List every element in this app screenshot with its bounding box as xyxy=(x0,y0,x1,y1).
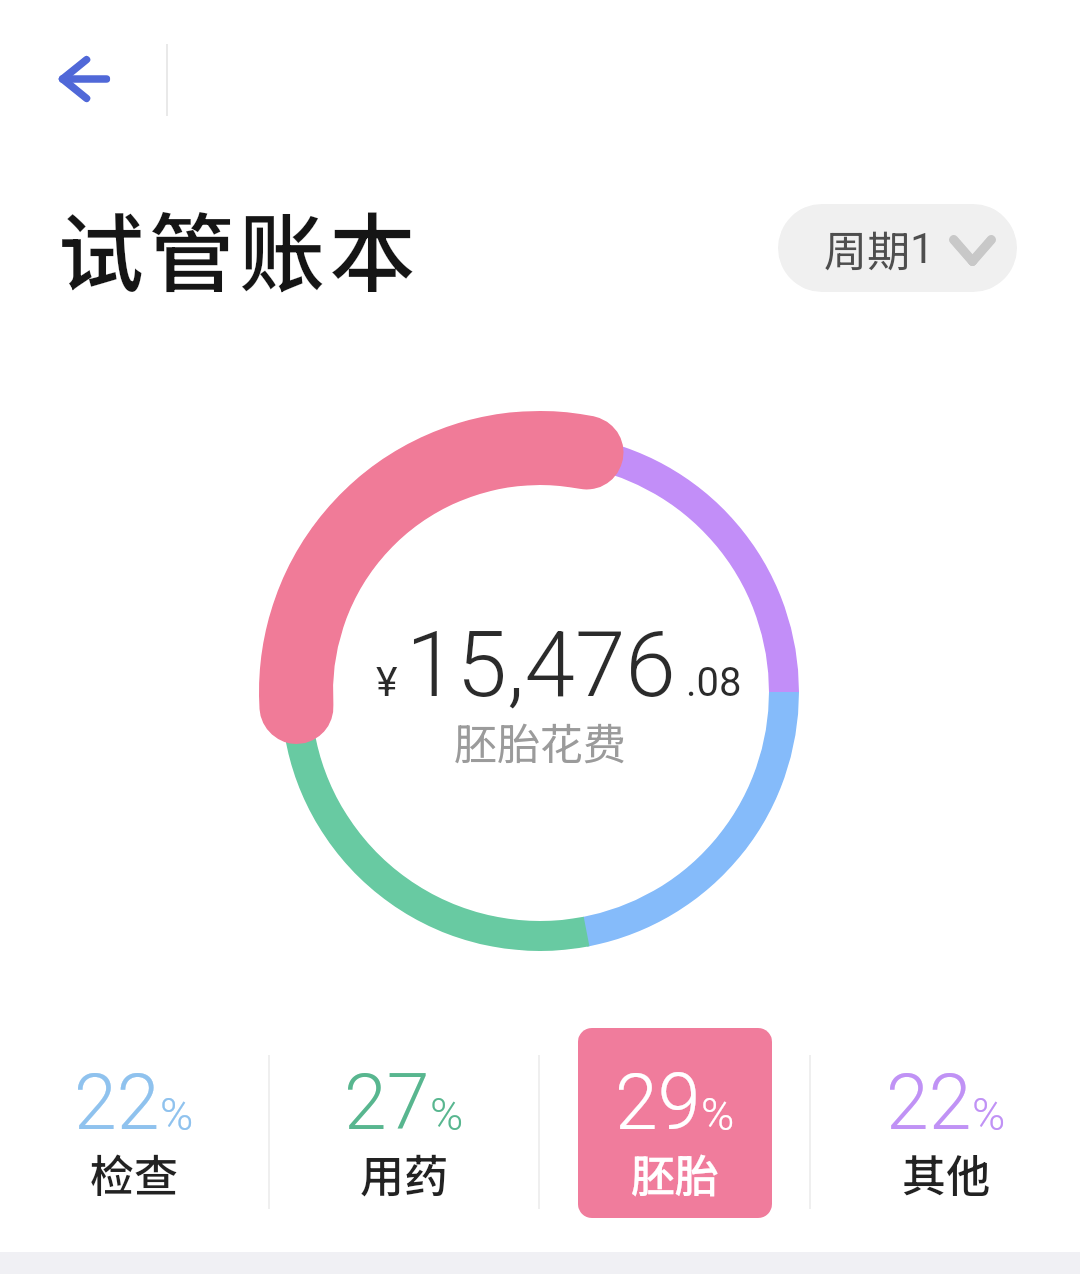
staticText: 1 xyxy=(910,223,935,273)
button[interactable]: 29 xyxy=(578,1028,772,1218)
staticText: 27 xyxy=(344,1058,430,1148)
staticText: 周期 xyxy=(824,217,910,279)
staticText: 其他 xyxy=(902,1141,990,1205)
staticText: % xyxy=(430,1088,464,1141)
staticText: ¥ xyxy=(376,658,398,706)
button[interactable]: Back xyxy=(38,33,130,125)
staticText: % xyxy=(701,1088,735,1141)
staticText: 用药 xyxy=(360,1141,448,1205)
button[interactable]: 周期 xyxy=(778,204,1017,292)
staticText: .08 xyxy=(686,659,742,706)
staticText: 15,476 xyxy=(406,612,676,719)
staticText: % xyxy=(972,1088,1006,1141)
staticText: 29 xyxy=(615,1058,701,1148)
staticText: 检查 xyxy=(90,1141,178,1205)
staticText: 胚胎花费 xyxy=(454,710,626,772)
button[interactable]: 27 xyxy=(307,1028,501,1218)
staticText: % xyxy=(160,1088,194,1141)
staticText: 胚胎 xyxy=(631,1141,719,1205)
staticText: 试管账本 xyxy=(58,185,420,310)
staticText: 22 xyxy=(74,1058,160,1148)
button[interactable]: 22 xyxy=(37,1028,231,1218)
button[interactable]: 22 xyxy=(849,1028,1043,1218)
staticText: 22 xyxy=(886,1058,972,1148)
